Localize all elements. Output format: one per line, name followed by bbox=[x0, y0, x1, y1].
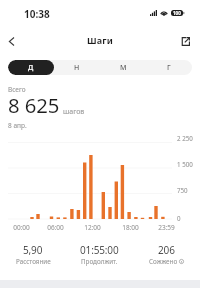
staticText: М bbox=[120, 63, 127, 73]
staticText: Всего bbox=[8, 85, 26, 94]
button[interactable]: Н bbox=[54, 60, 100, 75]
staticText: Д bbox=[28, 63, 34, 73]
staticText: 750 bbox=[177, 186, 188, 194]
staticText: 01:55:00 bbox=[80, 243, 119, 257]
button[interactable]: 5,90 bbox=[0, 243, 66, 266]
staticText: 06:00 bbox=[47, 223, 64, 232]
staticText: 8 апр. bbox=[8, 121, 27, 130]
staticText: Продолжит. bbox=[81, 257, 118, 266]
staticText: 206 bbox=[158, 243, 175, 257]
button[interactable]: Д bbox=[8, 60, 54, 75]
staticText: 2 250 bbox=[177, 134, 193, 142]
staticText: 1 500 bbox=[177, 160, 193, 168]
staticText: 0 bbox=[177, 214, 181, 222]
staticText: 23:59 bbox=[158, 223, 175, 232]
staticText: Сожжено bbox=[149, 257, 178, 266]
staticText: 00:00 bbox=[13, 223, 30, 232]
staticText: 8 625 bbox=[8, 91, 60, 119]
staticText: Г bbox=[167, 63, 171, 73]
staticText: Расстояние bbox=[16, 257, 51, 266]
staticText: 12:00 bbox=[84, 223, 101, 232]
staticText: 100 bbox=[173, 10, 181, 16]
button[interactable]: 206 bbox=[133, 243, 200, 266]
button[interactable]: Share bbox=[174, 30, 196, 52]
staticText: 5,90 bbox=[23, 243, 43, 257]
button[interactable]: М bbox=[100, 60, 146, 75]
staticText: шагов bbox=[63, 107, 85, 117]
staticText: Шаги bbox=[87, 34, 114, 46]
button[interactable]: Г bbox=[146, 60, 192, 75]
staticText: Н bbox=[74, 63, 80, 73]
staticText: 18:00 bbox=[122, 223, 139, 232]
button[interactable]: Back bbox=[0, 30, 22, 52]
staticText: 10:38 bbox=[24, 7, 50, 21]
button[interactable]: 01:55:00 bbox=[66, 243, 133, 266]
